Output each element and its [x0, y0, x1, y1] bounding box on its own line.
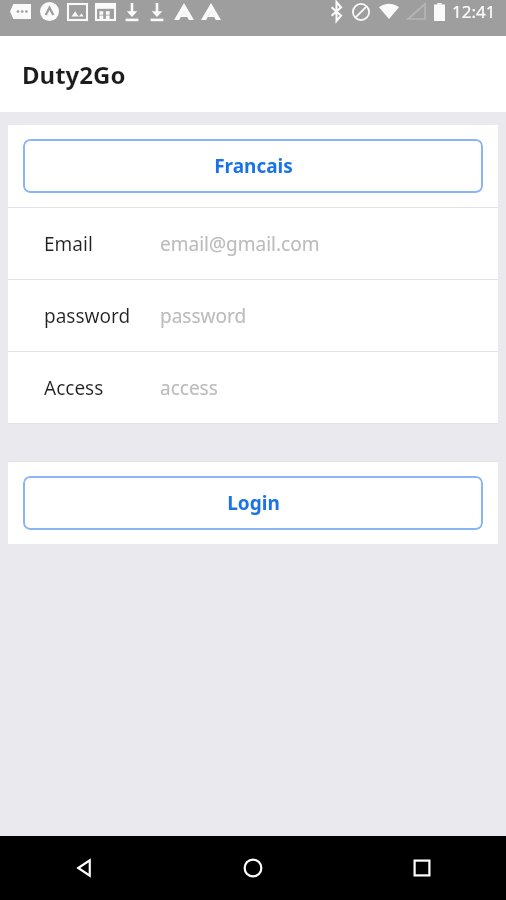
- staticText: password: [160, 303, 247, 329]
- button[interactable]: Home: [168, 836, 337, 900]
- staticText: Access: [44, 375, 104, 401]
- staticText: Login: [227, 490, 280, 516]
- staticText: access: [160, 375, 218, 401]
- staticText: password: [44, 303, 131, 329]
- staticText: Duty2Go: [22, 58, 126, 91]
- button[interactable]: Francais: [23, 139, 483, 193]
- button[interactable]: Access: [8, 352, 498, 423]
- staticText: Email: [44, 231, 93, 257]
- button[interactable]: password: [8, 280, 498, 351]
- staticText: 12:41: [452, 0, 496, 23]
- button[interactable]: Email: [8, 208, 498, 279]
- staticText: Francais: [214, 153, 293, 179]
- staticText: email@gmail.com: [160, 231, 320, 257]
- button[interactable]: Recents: [337, 836, 506, 900]
- button[interactable]: Login: [23, 476, 483, 530]
- button[interactable]: Back: [0, 836, 168, 900]
